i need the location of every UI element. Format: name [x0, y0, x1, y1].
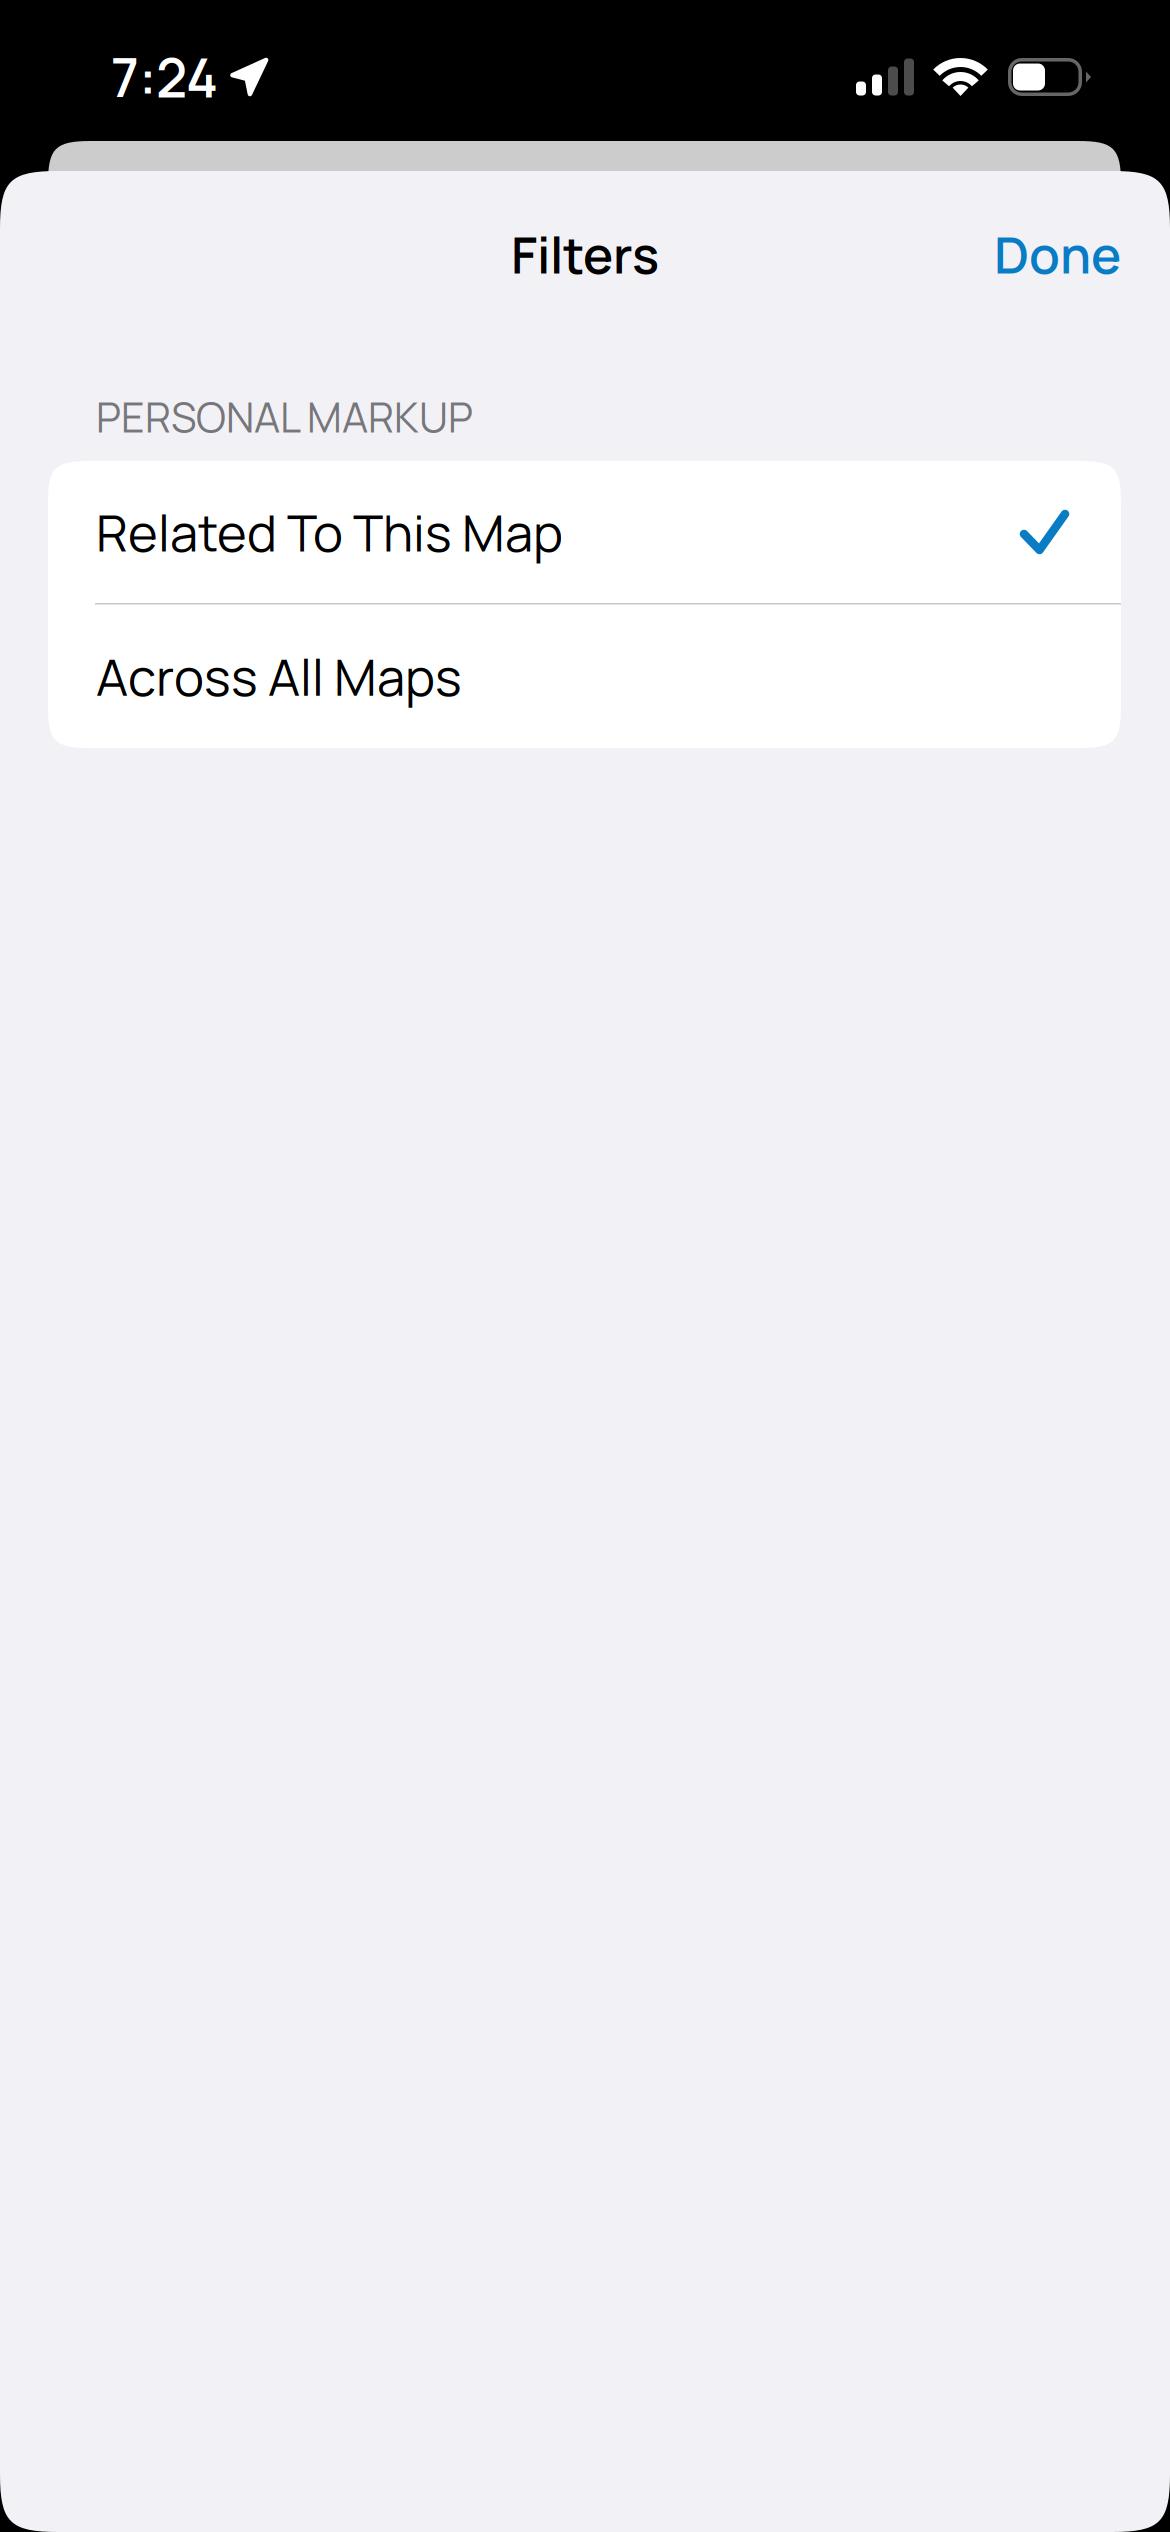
button[interactable]: Done: [970, 198, 1145, 310]
staticText: Across All Maps: [96, 642, 462, 711]
staticText: Related To This Map: [96, 497, 563, 567]
staticText: 7:24: [111, 41, 218, 113]
button[interactable]: Across All Maps: [48, 604, 1121, 748]
staticText: Filters: [511, 219, 659, 289]
staticText: Done: [994, 219, 1121, 289]
staticText: PERSONAL MARKUP: [96, 388, 473, 445]
button[interactable]: Related To This Map: [48, 461, 1121, 603]
